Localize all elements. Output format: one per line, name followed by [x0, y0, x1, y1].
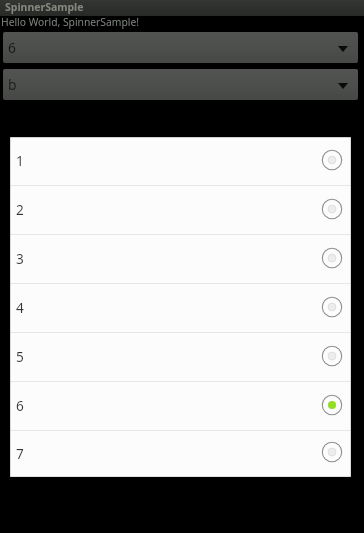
- staticText: 4: [16, 298, 24, 317]
- button[interactable]: 6: [10, 382, 351, 431]
- staticText: 6: [16, 396, 24, 415]
- staticText: 2: [16, 200, 24, 219]
- other: Open dropdown: [338, 83, 348, 89]
- staticText: b: [8, 75, 17, 94]
- button[interactable]: 5: [10, 333, 351, 382]
- other: Not selected: [320, 440, 344, 464]
- staticText: Hello World, SpinnerSample!: [1, 15, 139, 29]
- staticText: 1: [16, 151, 24, 170]
- button[interactable]: SpinnerSample: [0, 0, 364, 16]
- other: Not selected: [320, 148, 344, 172]
- other: Open dropdown: [338, 46, 348, 52]
- button[interactable]: 1: [10, 137, 351, 186]
- other: Not selected: [320, 197, 344, 221]
- other: Not selected: [320, 344, 344, 368]
- button[interactable]: 6: [3, 32, 358, 63]
- other: Selected: [320, 393, 344, 417]
- other: Not selected: [320, 246, 344, 270]
- staticText: 3: [16, 249, 24, 268]
- other: Not selected: [320, 295, 344, 319]
- staticText: 6: [8, 38, 16, 57]
- button[interactable]: 3: [10, 235, 351, 284]
- staticText: SpinnerSample: [5, 0, 84, 14]
- staticText: 5: [16, 347, 24, 366]
- button[interactable]: 2: [10, 186, 351, 235]
- button[interactable]: 4: [10, 284, 351, 333]
- staticText: 7: [16, 444, 24, 463]
- button[interactable]: 7: [10, 431, 351, 477]
- button[interactable]: b: [3, 69, 358, 100]
